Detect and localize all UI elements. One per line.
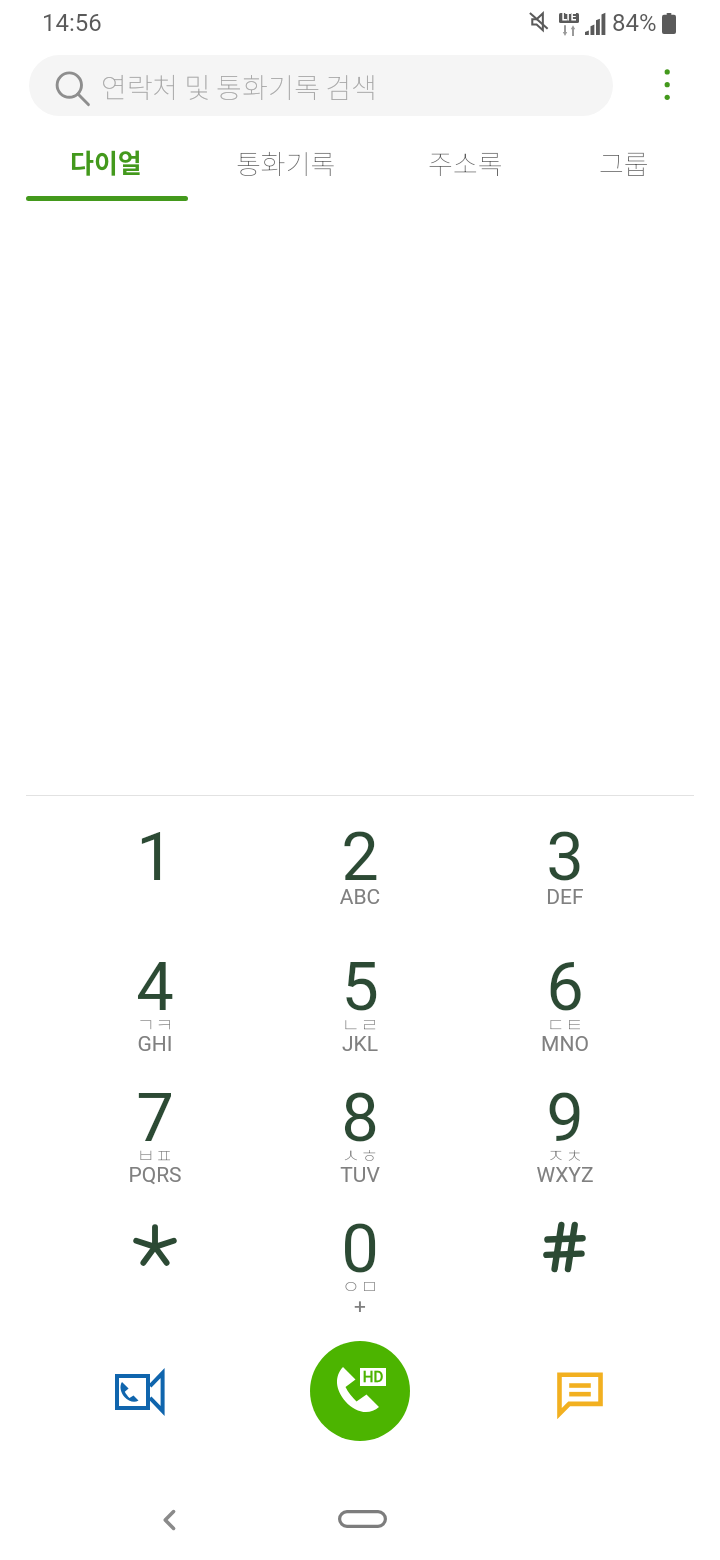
staticText: JKL <box>260 1032 460 1057</box>
staticText: ㄱㅋ <box>55 1009 255 1038</box>
staticText: 그룹 <box>599 143 649 182</box>
button[interactable]: 8 <box>260 1047 460 1187</box>
staticText: ㄴㄹ <box>260 1009 460 1038</box>
staticText: 4 <box>55 948 255 1027</box>
staticText: 1 <box>55 818 255 897</box>
staticText: ㅇㅁ <box>260 1271 460 1300</box>
staticText: LTE <box>559 12 579 23</box>
button[interactable]: 통화기록 <box>206 130 366 202</box>
button[interactable]: 그룹 <box>544 130 704 202</box>
staticText: 84% <box>612 9 657 37</box>
staticText: 0 <box>260 1210 460 1289</box>
button[interactable]: 5 <box>260 916 460 1056</box>
staticText: WXYZ <box>465 1163 665 1188</box>
staticText: 연락처 및 통화기록 검색 <box>101 66 378 107</box>
button[interactable] <box>55 1178 255 1318</box>
button[interactable]: Home <box>320 1480 400 1560</box>
staticText: 3 <box>465 818 665 897</box>
button[interactable]: 3 <box>465 786 665 926</box>
staticText: PQRS <box>55 1163 255 1188</box>
staticText: 8 <box>260 1079 460 1158</box>
staticText: ㅈㅊ <box>465 1140 665 1169</box>
staticText: + <box>260 1294 460 1319</box>
button[interactable]: 4 <box>55 916 255 1056</box>
staticText: ㅅㅎ <box>260 1140 460 1169</box>
button[interactable]: 주소록 <box>385 130 545 202</box>
button[interactable]: 다이얼 <box>26 130 186 202</box>
staticText: 9 <box>465 1079 665 1158</box>
button[interactable]: 1 <box>55 786 255 926</box>
button[interactable]: 2 <box>260 786 460 926</box>
staticText: 5 <box>260 948 460 1027</box>
staticText: ABC <box>260 885 460 910</box>
staticText: ㅂㅍ <box>55 1140 255 1169</box>
staticText: 7 <box>55 1079 255 1158</box>
button[interactable]: 6 <box>465 916 665 1056</box>
button[interactable]: Back <box>130 1480 210 1560</box>
staticText: ㄷㅌ <box>465 1009 665 1038</box>
staticText: 주소록 <box>428 143 503 182</box>
button[interactable]: More options <box>640 55 700 115</box>
button[interactable] <box>465 1178 665 1318</box>
button[interactable]: Call <box>310 1341 410 1441</box>
staticText: 2 <box>260 818 460 897</box>
button[interactable]: Video call <box>99 1352 179 1432</box>
staticText: DEF <box>465 885 665 910</box>
button[interactable]: 0 <box>260 1178 460 1318</box>
staticText: 다이얼 <box>70 143 142 181</box>
staticText: MNO <box>465 1032 665 1057</box>
button[interactable]: 9 <box>465 1047 665 1187</box>
button[interactable]: Message <box>540 1352 620 1432</box>
button[interactable]: 연락처 및 통화기록 검색 <box>29 55 613 116</box>
staticText: 14:56 <box>42 9 102 37</box>
staticText: 6 <box>465 948 665 1027</box>
staticText: 통화기록 <box>236 143 336 182</box>
staticText: TUV <box>260 1163 460 1188</box>
staticText: GHI <box>55 1032 255 1057</box>
staticText: HD <box>360 1368 386 1386</box>
button[interactable]: 7 <box>55 1047 255 1187</box>
